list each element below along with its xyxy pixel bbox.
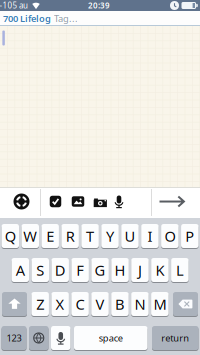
button[interactable]: Dictation [108, 187, 129, 215]
staticText: B [115, 294, 125, 314]
button[interactable]: D [51, 258, 69, 282]
staticText: M [153, 294, 166, 314]
staticText: 123 [6, 332, 21, 344]
staticText: Y [106, 226, 114, 246]
button[interactable]: Camera [90, 188, 111, 216]
button[interactable]: Shift [2, 292, 27, 316]
button[interactable]: N [131, 292, 149, 316]
staticText: C [76, 294, 85, 314]
button[interactable]: Q [1, 224, 19, 248]
button[interactable]: B [111, 292, 129, 316]
staticText: R [66, 226, 75, 246]
staticText: S [36, 260, 44, 280]
button[interactable]: U [121, 224, 139, 248]
button[interactable]: F [71, 258, 89, 282]
staticText: return [161, 332, 189, 344]
staticText: 700 Lifelog [3, 12, 51, 25]
button[interactable]: G [91, 258, 109, 282]
button[interactable]: Dictate [51, 326, 70, 350]
staticText: K [155, 260, 164, 280]
staticText: L [176, 260, 184, 280]
staticText: space [99, 332, 123, 344]
staticText: 20:39 [88, 0, 110, 11]
staticText: X [56, 294, 65, 314]
button[interactable]: Tag... [54, 12, 78, 25]
staticText: Z [36, 294, 44, 314]
button[interactable]: R [61, 224, 79, 248]
staticText: Tag... [54, 12, 78, 25]
staticText: au [19, 0, 28, 11]
button[interactable]: 700 Lifelog [3, 12, 51, 25]
staticText: I [147, 226, 152, 246]
button[interactable]: Location [4, 187, 38, 215]
staticText: -105 [0, 0, 17, 11]
button[interactable]: O [161, 224, 179, 248]
staticText: O [164, 226, 175, 246]
button[interactable]: Next keyboard [29, 326, 48, 350]
button[interactable]: I [141, 224, 159, 248]
staticText: F [76, 260, 84, 280]
button[interactable]: Z [31, 292, 49, 316]
button[interactable]: J [131, 258, 149, 282]
button[interactable]: A [11, 258, 29, 282]
staticText: E [46, 226, 54, 246]
button[interactable]: 123 [1, 326, 26, 350]
button[interactable]: E [41, 224, 59, 248]
button[interactable]: Delete [173, 292, 198, 316]
button[interactable]: K [151, 258, 169, 282]
button[interactable]: L [171, 258, 189, 282]
staticText: J [138, 260, 142, 280]
button[interactable]: C [71, 292, 89, 316]
button[interactable]: S [31, 258, 49, 282]
staticText: W [23, 226, 37, 246]
staticText: H [114, 260, 125, 280]
button[interactable]: return [152, 326, 198, 350]
button[interactable]: V [91, 292, 109, 316]
button[interactable]: space [74, 326, 147, 350]
staticText: G [95, 260, 106, 280]
button[interactable]: Y [101, 224, 119, 248]
button[interactable]: X [51, 292, 69, 316]
button[interactable]: H [111, 258, 129, 282]
staticText: P [185, 226, 194, 246]
staticText: N [134, 294, 145, 314]
button[interactable]: Photo library [67, 187, 88, 215]
button[interactable]: W [21, 224, 39, 248]
button[interactable]: T [81, 224, 99, 248]
staticText: A [16, 260, 25, 280]
button[interactable]: Checklist [45, 187, 66, 215]
button[interactable]: Send [150, 187, 194, 215]
staticText: V [95, 294, 104, 314]
staticText: U [124, 226, 135, 246]
staticText: D [55, 260, 66, 280]
staticText: Q [5, 226, 16, 246]
button[interactable]: M [151, 292, 169, 316]
staticText: T [86, 226, 94, 246]
button[interactable]: P [181, 224, 199, 248]
